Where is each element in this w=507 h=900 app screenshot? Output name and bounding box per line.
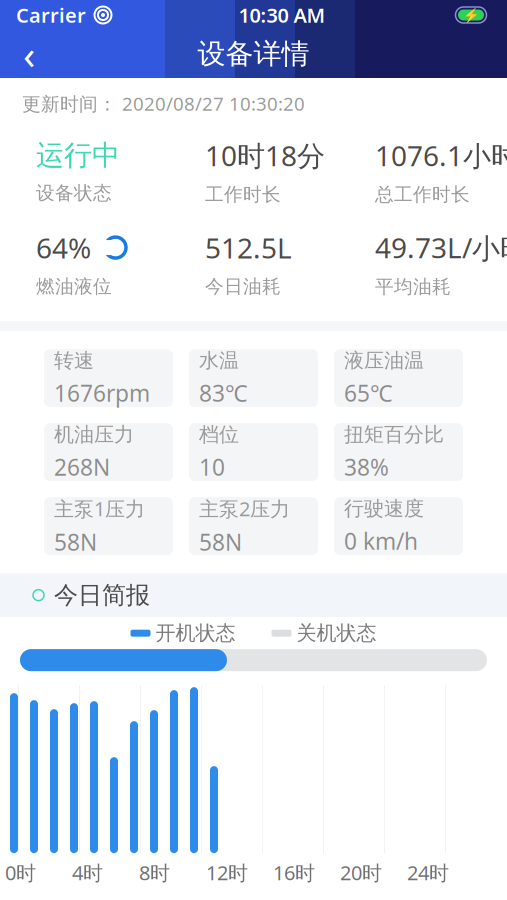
staticText: 20时 (340, 859, 382, 886)
staticText: 主泵1压力 (54, 495, 145, 522)
staticText: 水温 (199, 348, 239, 373)
staticText: ‹ (23, 27, 35, 80)
staticText: 0时 (5, 859, 36, 886)
staticText: 设备状态 (36, 182, 112, 204)
staticText: 65℃ (344, 378, 393, 408)
staticText: 512.5L (205, 229, 292, 266)
staticText: 12时 (206, 859, 248, 886)
staticText: 关机状态 (296, 621, 376, 645)
staticText: 58N (199, 527, 242, 557)
staticText: 0 km/h (344, 526, 418, 556)
staticText: 扭矩百分比 (344, 422, 444, 447)
staticText: 1076.1小时 (375, 137, 507, 174)
staticText: 64% (36, 229, 91, 266)
staticText: 主泵2压力 (199, 495, 290, 522)
staticText: 16时 (273, 859, 315, 886)
staticText: 10:30 AM (238, 2, 325, 28)
staticText: ⚡ (462, 7, 479, 23)
staticText: 运行中 (36, 138, 120, 173)
staticText: 49.73L/小时 (375, 229, 507, 266)
staticText: 4时 (72, 859, 103, 886)
staticText: 燃油液位 (36, 275, 112, 298)
staticText: 38% (344, 452, 389, 482)
staticText: 行驶速度 (344, 496, 424, 521)
staticText: 液压油温 (344, 348, 424, 373)
staticText: Carrier (16, 2, 86, 28)
staticText: 工作时长 (205, 183, 281, 206)
staticText: 设备详情 (197, 37, 309, 71)
staticText: 83℃ (199, 378, 248, 408)
staticText: 开机状态 (155, 621, 235, 645)
staticText: 8时 (139, 859, 170, 886)
staticText: 24时 (407, 859, 449, 886)
staticText: 机油压力 (54, 422, 134, 447)
staticText: 转速 (54, 348, 94, 373)
button[interactable]: Back (0, 31, 58, 77)
staticText: 268N (54, 452, 110, 482)
staticText: 今日油耗 (205, 275, 281, 298)
staticText: 今日简报 (54, 580, 150, 610)
staticText: 总工作时长 (375, 183, 470, 206)
staticText: 10时18分 (205, 137, 325, 174)
staticText: 1676rpm (54, 378, 150, 408)
staticText: 10 (199, 452, 225, 482)
staticText: 档位 (199, 422, 239, 447)
staticText: 更新时间： 2020/08/27 10:30:20 (22, 91, 305, 116)
staticText: 58N (54, 527, 97, 557)
staticText: 平均油耗 (375, 275, 451, 298)
